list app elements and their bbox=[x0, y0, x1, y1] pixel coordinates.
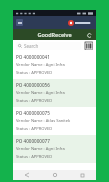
button[interactable]: Scan barcode bbox=[84, 41, 93, 50]
button[interactable]: PO 4000000056 bbox=[13, 79, 96, 107]
button[interactable]: Recent apps bbox=[78, 171, 86, 179]
staticText: Search bbox=[24, 43, 39, 49]
staticText: PO 4000000041 bbox=[16, 54, 50, 60]
staticText: PO 4000000075 bbox=[16, 110, 50, 116]
button[interactable]: PO 4000000077 bbox=[13, 135, 96, 163]
staticText: Vendor Name : Atlas Sanitek bbox=[16, 118, 71, 124]
staticText: Status : APPROVED bbox=[16, 126, 53, 132]
button[interactable]: GoodReceive bbox=[13, 29, 96, 40]
staticText: GoodReceive bbox=[37, 31, 72, 38]
staticText: Status : APPROVED bbox=[16, 70, 53, 76]
staticText: PO 4000000056 bbox=[16, 82, 50, 88]
button[interactable]: Search bbox=[16, 42, 81, 50]
button[interactable]: Menu bbox=[16, 19, 23, 26]
staticText: Vendor Name : Agni Infra bbox=[16, 90, 65, 96]
button[interactable]: Refresh bbox=[85, 31, 93, 39]
staticText: Vendor Name : Agni Infra bbox=[16, 146, 65, 152]
staticText: PO 4000000077 bbox=[16, 138, 50, 144]
button[interactable]: Home bbox=[51, 171, 59, 179]
button[interactable]: PO 4000000075 bbox=[13, 107, 96, 135]
staticText: Status : APPROVED bbox=[16, 98, 53, 104]
button[interactable]: PO 4000000041 bbox=[13, 51, 96, 79]
button[interactable]: Back bbox=[23, 171, 31, 179]
staticText: Vendor Name : Agni Infra bbox=[16, 62, 65, 68]
staticText: Status : APPROVED bbox=[16, 154, 53, 160]
